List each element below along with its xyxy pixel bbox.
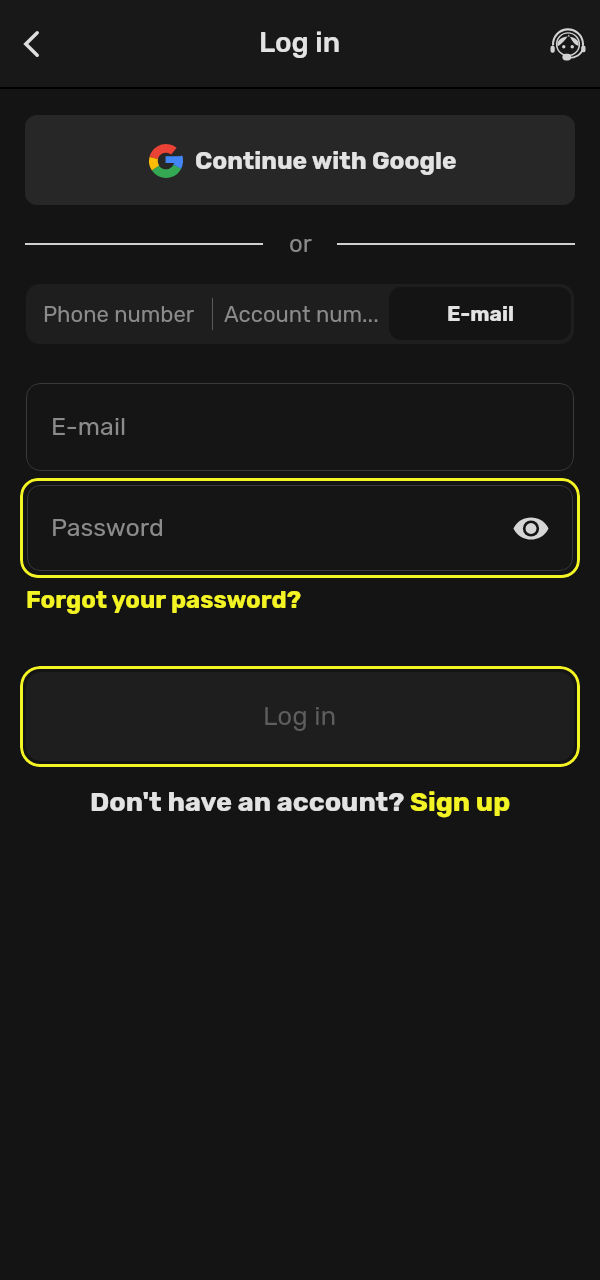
button[interactable]: Phone number: [26, 284, 212, 344]
button[interactable]: Don't have an account? Sign up: [90, 786, 511, 818]
button[interactable]: Customer support: [540, 18, 592, 70]
button[interactable]: Password: [27, 485, 573, 571]
staticText: Log in: [263, 701, 337, 732]
staticText: Phone number: [43, 301, 195, 327]
button[interactable]: Show password: [508, 505, 554, 551]
button[interactable]: E-mail: [389, 287, 571, 340]
button[interactable]: E-mail: [26, 383, 574, 471]
staticText: Password: [51, 513, 164, 543]
staticText: or: [289, 230, 312, 258]
staticText: Don't have an account? Sign up: [90, 786, 511, 818]
button[interactable]: Forgot your password?: [26, 586, 302, 614]
staticText: E-mail: [51, 412, 127, 442]
button[interactable]: Back: [3, 16, 59, 72]
button[interactable]: Continue with Google: [25, 115, 575, 205]
button[interactable]: Account num...: [213, 284, 389, 344]
staticText: Continue with Google: [195, 146, 457, 175]
button[interactable]: Log in: [26, 672, 574, 761]
staticText: Account num...: [224, 301, 379, 327]
staticText: Log in: [259, 26, 341, 59]
staticText: Forgot your password?: [26, 586, 302, 614]
staticText: E-mail: [447, 301, 514, 326]
